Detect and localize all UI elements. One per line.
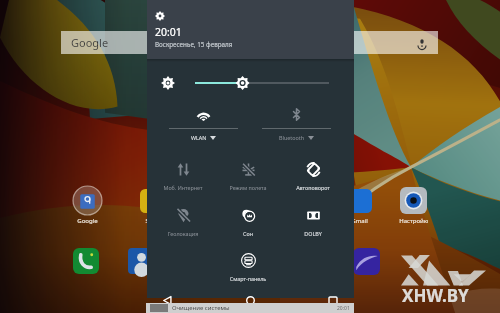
- staticText: Очищение системы: [172, 304, 230, 312]
- staticText: Автоповорот: [281, 184, 345, 191]
- button[interactable]: Brightness slider: [188, 76, 336, 90]
- button[interactable]: Смарт-панель: [216, 248, 280, 282]
- button[interactable]: Автоповорот: [281, 157, 345, 191]
- staticText: SMS: [145, 217, 158, 225]
- button[interactable]: Google: [61, 31, 438, 54]
- button[interactable]: Recent apps: [320, 294, 346, 307]
- staticText: Gmail: [351, 217, 368, 225]
- staticText: Bluetooth: [279, 134, 305, 141]
- button[interactable]: WLAN: [157, 100, 250, 141]
- staticText: Смарт-панель: [216, 275, 280, 282]
- button[interactable]: Settings: [147, 0, 354, 59]
- button[interactable]: SMS: [137, 186, 166, 225]
- button[interactable]: Gmail: [345, 186, 374, 225]
- staticText: Геолокация: [151, 230, 215, 237]
- staticText: WLAN: [191, 134, 207, 141]
- staticText: DOLBY: [281, 230, 345, 237]
- button[interactable]: Brightness: [161, 76, 175, 90]
- staticText: Режим полета: [216, 184, 280, 191]
- button[interactable]: Настройки: [399, 186, 428, 225]
- staticText: Воскресенье, 15 февраля: [155, 40, 233, 49]
- staticText: Настройки: [399, 217, 428, 225]
- button[interactable]: Home: [237, 294, 263, 307]
- button[interactable]: Back: [154, 294, 180, 307]
- button[interactable]: Bluetooth: [250, 100, 343, 141]
- button[interactable]: [72, 247, 100, 275]
- staticText: Google: [77, 217, 98, 225]
- button[interactable]: Режим полета: [216, 157, 280, 191]
- button[interactable]: [127, 247, 155, 275]
- button[interactable]: Геолокация: [151, 203, 215, 237]
- staticText: XHW.BY: [402, 284, 469, 307]
- staticText: 20:01: [337, 305, 350, 312]
- staticText: Сон: [216, 230, 280, 237]
- button[interactable]: Очищение системы: [146, 303, 354, 313]
- button[interactable]: [352, 247, 380, 275]
- button[interactable]: Google: [73, 186, 102, 225]
- other: Settings: [155, 11, 165, 21]
- staticText: 20:01: [155, 25, 182, 39]
- button[interactable]: DOLBY: [281, 203, 345, 237]
- staticText: Google: [71, 35, 109, 50]
- button[interactable]: Моб. Интернет: [151, 157, 215, 191]
- button[interactable]: Сон: [216, 203, 280, 237]
- staticText: Моб. Интернет: [151, 184, 215, 191]
- other: Voice search: [416, 37, 428, 49]
